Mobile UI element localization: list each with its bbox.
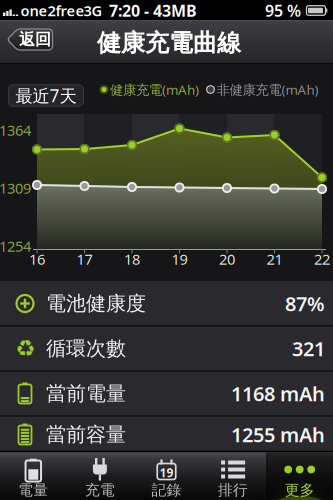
staticText: 健康充電(mAh) (110, 81, 199, 98)
button[interactable]: 排行 (200, 452, 266, 499)
staticText: 非健康充電(mAh) (216, 81, 318, 98)
staticText: 95 % (265, 0, 301, 21)
staticText: 87% (285, 290, 325, 317)
staticText: 16 (29, 249, 45, 269)
staticText: 3G (83, 1, 102, 20)
staticText: 22 (314, 249, 330, 269)
button[interactable]: 電量 (0, 452, 67, 499)
button[interactable]: 充電 (67, 452, 133, 499)
staticText: 21 (266, 249, 282, 269)
staticText: 1364 (0, 120, 31, 140)
staticText: 最近7天 (15, 84, 76, 107)
staticText: 排行 (218, 481, 248, 499)
staticText: 20 (219, 249, 235, 269)
staticText: ♻ (15, 336, 35, 361)
staticText: 1255 mAh (231, 421, 325, 448)
staticText: 1168 mAh (231, 380, 325, 407)
staticText: 電池健康度 (46, 291, 146, 316)
staticText: 321 (292, 335, 325, 362)
staticText: 返回 (19, 30, 51, 49)
staticText: 充電 (85, 481, 115, 499)
staticText: 更多 (285, 481, 315, 499)
staticText: 當前容量 (46, 422, 126, 447)
staticText: one2free (20, 1, 84, 20)
button[interactable]: 更多 (266, 452, 333, 499)
button[interactable]: 19 (133, 452, 200, 499)
staticText: 1254 (0, 236, 31, 256)
staticText: 7:20 - 43MB (109, 0, 197, 21)
staticText: 19 (171, 249, 187, 269)
button[interactable]: Back (7, 28, 53, 51)
staticText: 18 (124, 249, 140, 269)
staticText: 當前電量 (46, 381, 126, 406)
staticText: 健康充電曲線 (97, 28, 241, 58)
staticText: 循環次數 (46, 336, 126, 361)
staticText: 電量 (18, 481, 48, 499)
staticText: 19 (159, 464, 173, 480)
staticText: 17 (76, 249, 92, 269)
staticText: 記錄 (151, 481, 181, 499)
button[interactable]: 最近7天 (8, 85, 83, 106)
staticText: 1309 (0, 178, 31, 198)
